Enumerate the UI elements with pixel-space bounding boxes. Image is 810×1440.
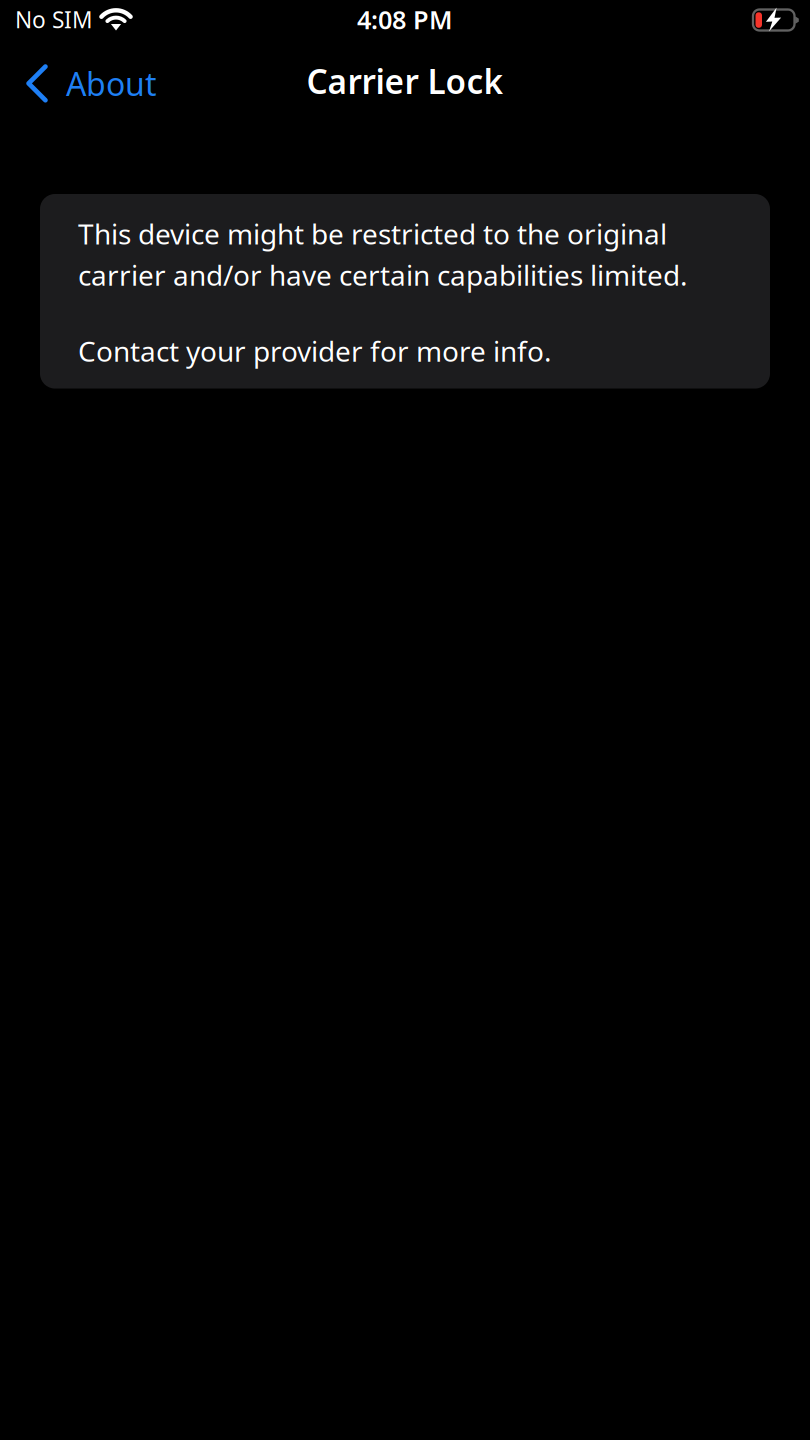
staticText: 4:08 PM xyxy=(357,3,453,36)
staticText: This device might be restricted to the o… xyxy=(78,215,688,293)
staticText: About xyxy=(66,62,157,105)
staticText: Carrier Lock xyxy=(306,59,503,103)
button[interactable]: About xyxy=(14,55,169,111)
staticText: No SIM xyxy=(15,4,93,34)
staticText: Contact your provider for more info. xyxy=(78,332,552,370)
